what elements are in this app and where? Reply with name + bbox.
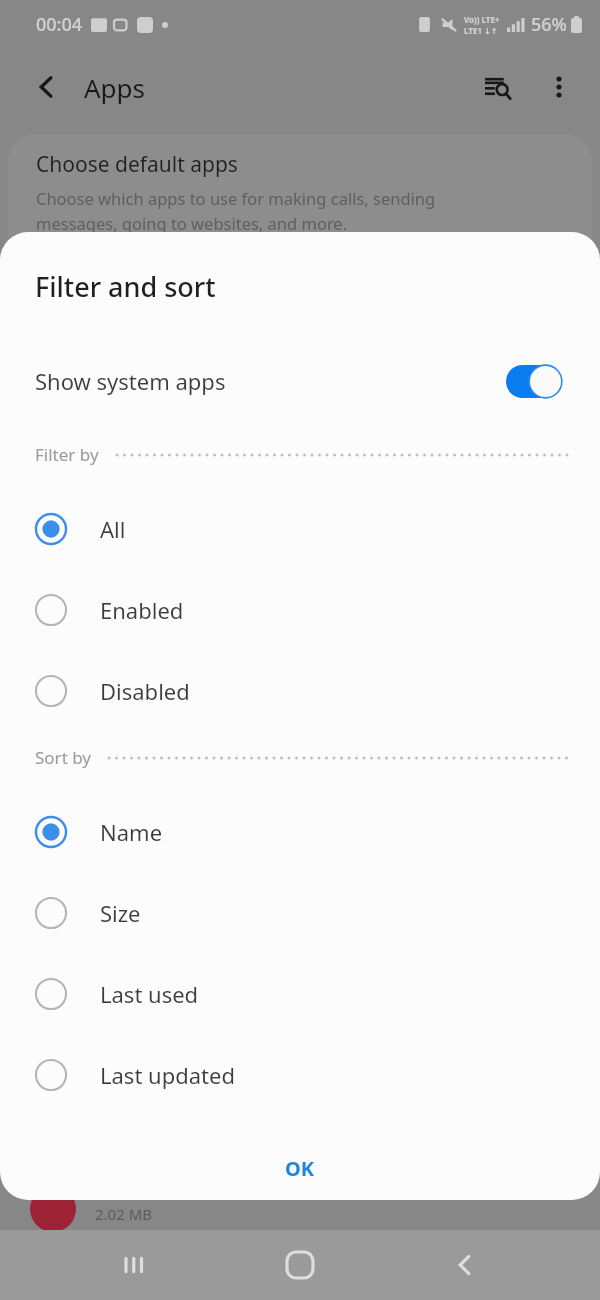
button[interactable]: Back: [24, 64, 70, 110]
staticText: LTE1 ↓↑: [464, 25, 498, 36]
staticText: 56%: [531, 12, 567, 37]
staticText: Enabled: [100, 595, 184, 625]
button[interactable]: OK: [251, 1143, 349, 1194]
button[interactable]: All: [0, 488, 600, 569]
staticText: Filter and sort: [35, 268, 216, 305]
staticText: All: [100, 514, 126, 544]
staticText: Disabled: [100, 676, 190, 706]
staticText: Name: [100, 817, 163, 847]
staticText: Filter by: [35, 443, 99, 466]
button[interactable]: More options: [536, 64, 582, 110]
button[interactable]: Home: [271, 1236, 329, 1294]
staticText: Choose default apps: [36, 150, 238, 179]
staticText: Size: [100, 898, 141, 928]
staticText: Last updated: [100, 1060, 235, 1090]
staticText: messages, going to websites, and more.: [36, 212, 348, 234]
button[interactable]: Back: [436, 1236, 494, 1294]
button[interactable]: Enabled: [0, 569, 600, 650]
staticText: Apps: [84, 70, 146, 105]
staticText: 2.02 MB: [95, 1204, 153, 1224]
staticText: Choose which apps to use for making call…: [36, 187, 436, 209]
staticText: Sort by: [35, 746, 91, 769]
button[interactable]: Disabled: [0, 650, 600, 731]
staticText: 00:04: [36, 12, 83, 37]
button[interactable]: Sort and search: [474, 63, 522, 111]
button[interactable]: Size: [0, 872, 600, 953]
staticText: Show system apps: [35, 366, 226, 396]
staticText: OK: [285, 1155, 315, 1182]
button[interactable]: Name: [0, 791, 600, 872]
staticText: Last used: [100, 979, 199, 1009]
button[interactable]: Show system apps: [0, 353, 600, 409]
staticText: Vo)) LTE+: [464, 14, 500, 25]
button[interactable]: Recents: [107, 1236, 165, 1294]
button[interactable]: Last used: [0, 953, 600, 1034]
button[interactable]: Last updated: [0, 1034, 600, 1115]
